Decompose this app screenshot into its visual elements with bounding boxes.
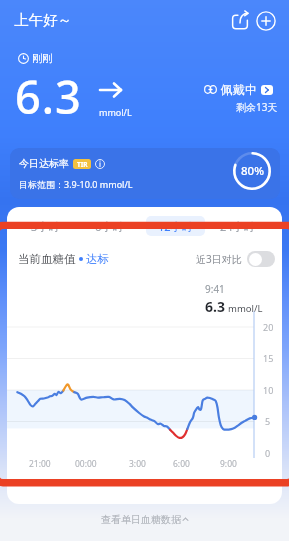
staticText: 9:41 bbox=[205, 282, 225, 296]
staticText: 80% bbox=[241, 163, 264, 179]
staticText: 24小时 bbox=[220, 219, 255, 234]
staticText: 达标 bbox=[86, 252, 109, 266]
staticText: 6.3 bbox=[205, 297, 225, 316]
staticText: 当前血糖值 bbox=[18, 252, 76, 266]
staticText: 9:00 bbox=[220, 458, 237, 470]
staticText: 剩余13天 bbox=[236, 100, 278, 114]
button[interactable]: 12小时 bbox=[146, 216, 205, 236]
staticText: mmol/L bbox=[228, 302, 263, 315]
staticText: TIR bbox=[77, 160, 88, 169]
button[interactable]: 3小时 bbox=[16, 216, 75, 236]
staticText: 今日达标率 bbox=[19, 157, 69, 170]
staticText: 5 bbox=[265, 415, 271, 427]
staticText: 20 bbox=[263, 321, 274, 333]
button[interactable]: Share bbox=[228, 9, 251, 32]
staticText: 6.3 bbox=[15, 66, 82, 127]
staticText: 佩戴中 bbox=[221, 82, 257, 97]
staticText: 3小时 bbox=[31, 219, 60, 234]
staticText: 6小时 bbox=[95, 219, 124, 234]
staticText: 12小时 bbox=[158, 219, 193, 234]
staticText: 0 bbox=[265, 447, 271, 459]
button[interactable]: 佩戴中 bbox=[204, 82, 273, 97]
staticText: 15 bbox=[263, 352, 274, 364]
staticText: mmol/L bbox=[99, 106, 132, 118]
staticText: 查看单日血糖数据 bbox=[101, 513, 181, 526]
button[interactable]: 6小时 bbox=[80, 216, 139, 236]
staticText: 上午好～ bbox=[14, 11, 72, 29]
staticText: 00:00 bbox=[75, 458, 97, 470]
button[interactable]: 24小时 bbox=[208, 216, 267, 236]
staticText: 刚刚 bbox=[32, 52, 52, 65]
staticText: 近3日对比 bbox=[196, 252, 242, 266]
button[interactable]: 今日达标率 bbox=[10, 148, 280, 199]
staticText: 21:00 bbox=[29, 458, 51, 470]
staticText: 10 bbox=[263, 384, 274, 396]
staticText: 3:00 bbox=[129, 458, 146, 470]
button[interactable]: Add device bbox=[254, 9, 278, 33]
button[interactable]: Compare last 3 days bbox=[247, 251, 275, 267]
staticText: 6:00 bbox=[173, 458, 190, 470]
staticText: 目标范围：3.9-10.0 mmol/L bbox=[19, 178, 133, 190]
button[interactable]: 查看单日血糖数据 bbox=[0, 508, 289, 530]
